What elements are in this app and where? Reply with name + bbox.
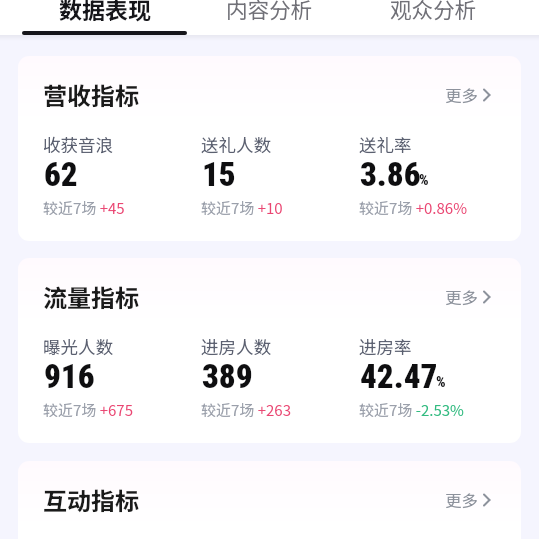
staticText: 较近7场 +10 xyxy=(201,197,283,217)
staticText: 互动指标 xyxy=(43,482,139,517)
staticText: 送礼人数 xyxy=(201,132,271,157)
staticText: 916 xyxy=(44,357,95,396)
staticText: 进房人数 xyxy=(201,334,271,359)
staticText: 数据表现 xyxy=(59,0,151,25)
button[interactable]: 观众分析 xyxy=(351,0,515,35)
staticText: 收获音浪 xyxy=(43,132,113,157)
button[interactable]: 互动指标 xyxy=(18,461,521,539)
staticText: 营收指标 xyxy=(43,77,139,112)
staticText: % xyxy=(436,373,446,391)
staticText: % xyxy=(419,171,429,189)
button[interactable]: 更多 流量指标 xyxy=(445,285,491,309)
staticText: 流量指标 xyxy=(43,279,139,314)
button[interactable]: 流量指标 xyxy=(18,258,521,443)
button[interactable]: 数据表现 xyxy=(22,0,187,35)
staticText: 42.47 xyxy=(360,357,438,396)
staticText: 进房率 xyxy=(359,334,412,359)
staticText: 较近7场 +0.86% xyxy=(359,197,467,217)
staticText: 较近7场 +675 xyxy=(43,399,133,419)
staticText: 更多 xyxy=(445,285,478,309)
staticText: 更多 xyxy=(445,83,478,107)
staticText: 较近7场 +263 xyxy=(201,399,291,419)
button[interactable]: 送礼率 xyxy=(359,132,517,217)
staticText: 内容分析 xyxy=(226,0,313,24)
staticText: 15 xyxy=(202,155,236,194)
button[interactable]: 进房人数 xyxy=(201,334,359,419)
staticText: 较近7场 +45 xyxy=(43,197,125,217)
button[interactable]: 更多 营收指标 xyxy=(445,83,491,107)
staticText: 曝光人数 xyxy=(43,334,113,359)
staticText: 较近7场 -2.53% xyxy=(359,399,464,419)
staticText: 3.86 xyxy=(360,155,421,194)
button[interactable]: 进房率 xyxy=(359,334,517,419)
staticText: 更多 xyxy=(445,488,478,512)
button[interactable]: 送礼人数 xyxy=(201,132,359,217)
staticText: 送礼率 xyxy=(359,132,412,157)
staticText: 62 xyxy=(44,155,78,194)
button[interactable]: 营收指标 xyxy=(18,56,521,241)
button[interactable]: 收获音浪 xyxy=(43,132,201,217)
button[interactable]: 曝光人数 xyxy=(43,334,201,419)
staticText: 观众分析 xyxy=(390,0,477,24)
button[interactable]: 更多 互动指标 xyxy=(445,488,491,512)
button[interactable]: 内容分析 xyxy=(187,0,351,35)
staticText: 389 xyxy=(202,357,253,396)
